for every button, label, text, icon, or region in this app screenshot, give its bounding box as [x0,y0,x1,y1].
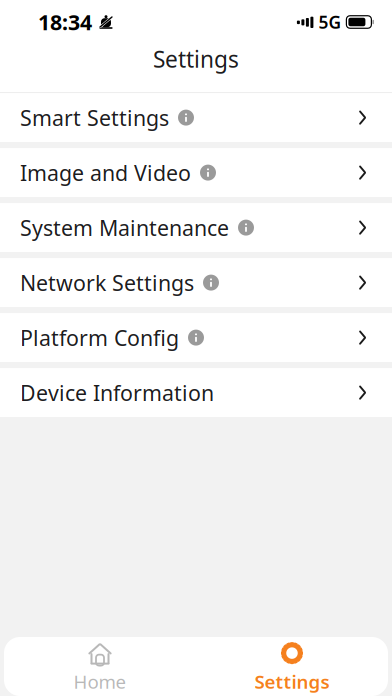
staticText: Home [73,669,126,694]
button[interactable]: Smart Settings [0,93,392,142]
staticText: Smart Settings [20,103,169,132]
staticText: Platform Config [20,323,179,352]
button[interactable]: Network Settings [0,258,392,307]
staticText: Settings [153,44,239,74]
staticText: Settings [254,669,329,694]
button[interactable]: Settings [196,631,388,696]
staticText: Device Information [20,378,214,407]
staticText: 5G [318,10,341,33]
button[interactable]: Image and Video [0,148,392,197]
staticText: Image and Video [20,158,191,187]
staticText: 18:34 [38,8,92,36]
staticText: Network Settings [20,268,194,297]
staticText: System Maintenance [20,213,229,242]
button[interactable]: Platform Config [0,313,392,362]
button[interactable]: System Maintenance [0,203,392,252]
button[interactable]: Device Information [0,368,392,417]
button[interactable]: Home [4,631,196,696]
